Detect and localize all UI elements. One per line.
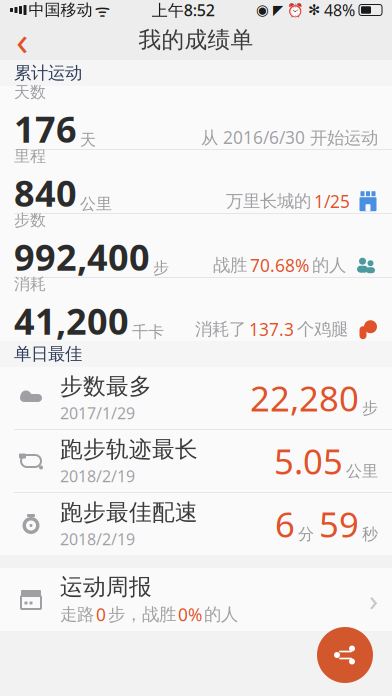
- staticText: ›: [369, 580, 378, 619]
- staticText: 我的成绩单: [138, 26, 253, 54]
- staticText: 中国移动: [28, 0, 92, 20]
- staticText: 步: [153, 258, 169, 278]
- staticText: 跑步轨迹最长: [60, 435, 198, 463]
- staticText: 步，战胜: [108, 604, 176, 625]
- button[interactable]: 运动周报: [0, 568, 392, 631]
- button[interactable]: 跑步最佳配速: [0, 493, 392, 555]
- staticText: 2018/2/19: [60, 465, 135, 486]
- staticText: 步数: [14, 210, 46, 230]
- staticText: 千卡: [132, 322, 164, 342]
- staticText: 跑步最佳配速: [60, 498, 198, 526]
- staticText: 2017/1/29: [60, 402, 135, 423]
- staticText: 公里: [346, 461, 378, 481]
- staticText: 的人: [204, 604, 238, 625]
- staticText: 万里长城的: [226, 191, 311, 212]
- staticText: 的人: [312, 255, 346, 276]
- staticText: ◉: [256, 2, 269, 18]
- staticText: 59: [319, 501, 359, 547]
- staticText: 战胜: [213, 255, 247, 276]
- staticText: 天数: [14, 82, 46, 102]
- staticText: ⏰: [287, 2, 304, 18]
- staticText: ✻: [308, 2, 320, 18]
- staticText: 公里: [80, 194, 112, 214]
- staticText: 走路: [60, 604, 94, 625]
- staticText: 5.05: [274, 438, 343, 484]
- staticText: 从 2016/6/30 开始运动: [201, 126, 378, 149]
- staticText: 分: [298, 524, 314, 544]
- staticText: 里程: [14, 146, 46, 166]
- staticText: 消耗了: [195, 319, 246, 340]
- staticText: 累计运动: [14, 62, 82, 84]
- staticText: ◤: [273, 2, 283, 17]
- staticText: 个鸡腿: [297, 319, 348, 340]
- staticText: 天: [80, 130, 96, 150]
- staticText: 41,200: [14, 297, 129, 345]
- staticText: 上午8:52: [152, 0, 215, 21]
- staticText: ‹: [16, 13, 28, 66]
- staticText: 步: [362, 398, 378, 418]
- staticText: 840: [14, 169, 77, 217]
- staticText: 消耗: [14, 274, 46, 294]
- staticText: 22,280: [250, 375, 359, 421]
- button[interactable]: Back: [0, 20, 44, 60]
- staticText: 0: [96, 603, 106, 626]
- staticText: 秒: [362, 524, 378, 544]
- staticText: 2018/2/19: [60, 528, 135, 549]
- staticText: 176: [14, 105, 77, 153]
- staticText: 单日最佳: [14, 343, 82, 365]
- staticText: 运动周报: [60, 573, 152, 601]
- staticText: 992,400: [14, 233, 150, 281]
- button[interactable]: 跑步轨迹最长: [0, 430, 392, 492]
- staticText: 1/25: [314, 190, 350, 213]
- staticText: 步数最多: [60, 372, 152, 400]
- staticText: 0%: [178, 603, 202, 626]
- staticText: 70.68%: [250, 254, 309, 277]
- button[interactable]: 步数最多: [0, 367, 392, 429]
- staticText: 6: [275, 501, 295, 547]
- staticText: ᯤ: [94, 0, 110, 21]
- staticText: 137.3: [249, 318, 294, 341]
- button[interactable]: Share: [317, 627, 373, 683]
- staticText: 48%: [324, 0, 355, 21]
